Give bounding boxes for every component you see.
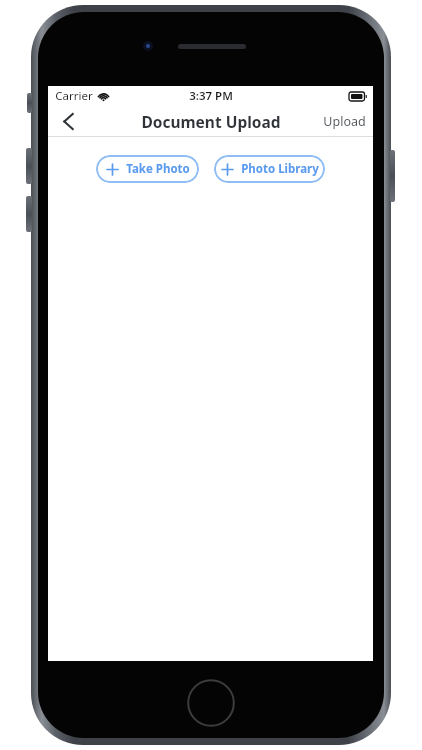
staticText: Carrier — [55, 88, 93, 104]
button[interactable]: Photo Library — [214, 155, 325, 183]
other: Home — [187, 679, 235, 727]
staticText: 3:37 PM — [189, 88, 233, 104]
staticText: Document Upload — [141, 111, 281, 132]
button[interactable]: Take Photo — [96, 155, 199, 183]
staticText: Take Photo — [126, 161, 190, 177]
staticText: Upload — [323, 113, 366, 130]
staticText: Photo Library — [241, 161, 319, 177]
button[interactable]: Back — [48, 106, 88, 136]
button[interactable]: Upload — [316, 106, 373, 136]
